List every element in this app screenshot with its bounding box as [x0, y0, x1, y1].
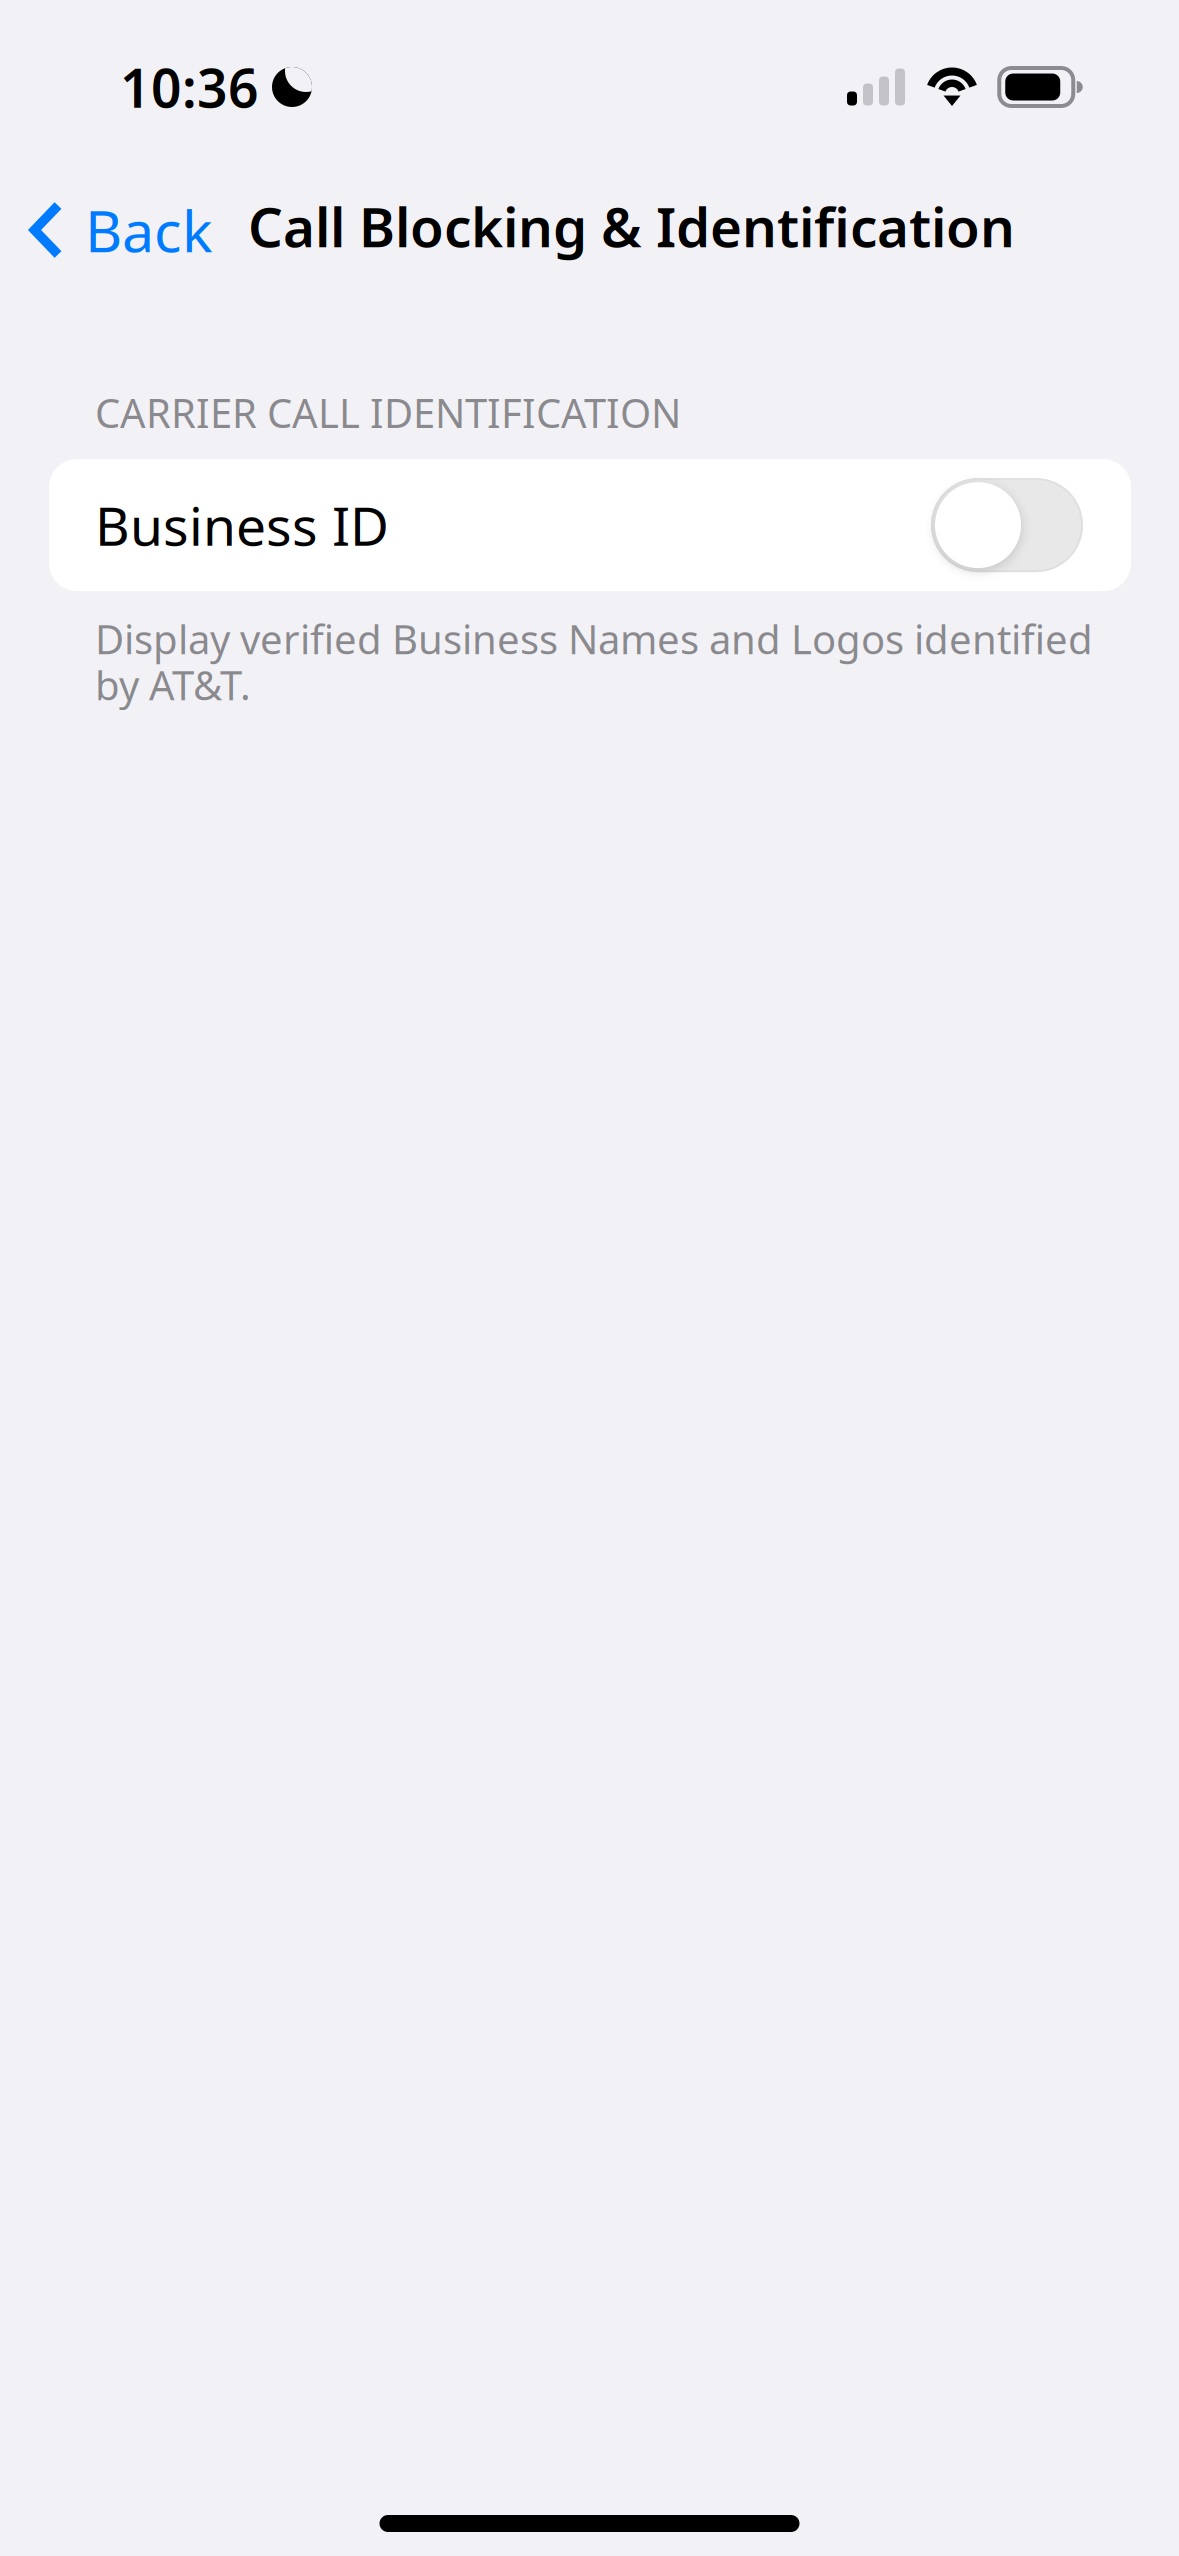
staticText: Call Blocking & Identification [248, 190, 1015, 262]
staticText: CARRIER CALL IDENTIFICATION [95, 386, 681, 439]
button[interactable]: Business ID [49, 459, 1131, 591]
staticText: 10:36 [120, 52, 259, 122]
staticText: Back [85, 192, 213, 268]
button[interactable]: Back [0, 174, 227, 286]
staticText: Display verified Business Names and Logo… [95, 612, 1093, 711]
staticText: Business ID [95, 490, 389, 560]
button[interactable]: Business ID, off [931, 478, 1083, 572]
